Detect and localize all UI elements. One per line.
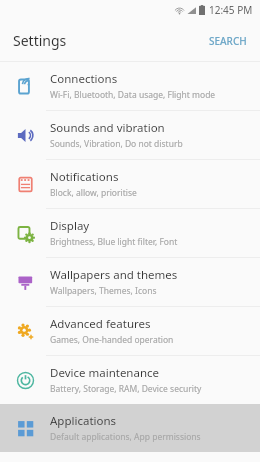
- staticText: Wallpapers, Themes, Icons: [50, 285, 157, 297]
- button[interactable]: Device maintenance: [0, 356, 260, 404]
- staticText: Settings: [13, 31, 67, 50]
- staticText: Advanced features: [50, 316, 151, 332]
- staticText: Device maintenance: [50, 365, 160, 381]
- button[interactable]: Sounds and vibration: [0, 111, 260, 159]
- button[interactable]: Connections: [0, 62, 260, 110]
- staticText: Block, allow, prioritise: [50, 187, 137, 199]
- staticText: Connections: [50, 71, 118, 87]
- staticText: Wallpapers and themes: [50, 267, 178, 283]
- button[interactable]: Display: [0, 209, 260, 257]
- staticText: Sounds and vibration: [50, 120, 165, 136]
- button[interactable]: Applications: [0, 404, 260, 452]
- staticText: Sounds, Vibration, Do not disturb: [50, 138, 183, 150]
- button[interactable]: Wallpapers and themes: [0, 258, 260, 306]
- button[interactable]: SEARCH: [196, 26, 260, 56]
- staticText: Default applications, App permissions: [50, 431, 201, 443]
- button[interactable]: Notifications: [0, 160, 260, 208]
- staticText: Games, One-handed operation: [50, 334, 174, 346]
- button[interactable]: Advanced features: [0, 307, 260, 355]
- staticText: Notifications: [50, 169, 119, 185]
- staticText: Applications: [50, 413, 117, 429]
- staticText: Wi-Fi, Bluetooth, Data usage, Flight mod…: [50, 89, 216, 101]
- staticText: 12:45 PM: [209, 3, 253, 17]
- staticText: SEARCH: [209, 34, 247, 48]
- staticText: Brightness, Blue light filter, Font: [50, 236, 178, 248]
- staticText: Battery, Storage, RAM, Device security: [50, 383, 202, 395]
- staticText: Display: [50, 218, 90, 234]
